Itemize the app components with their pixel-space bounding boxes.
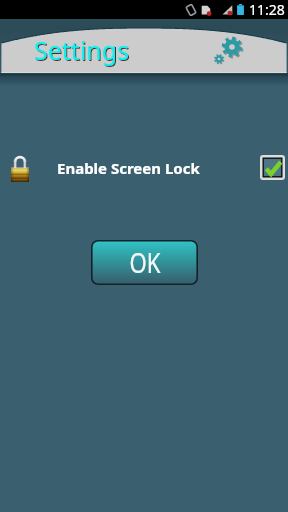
button[interactable]: Enable Screen Lock xyxy=(0,153,288,182)
button[interactable]: OK xyxy=(91,240,198,285)
button[interactable]: Settings xyxy=(208,32,252,76)
staticText: OK xyxy=(129,243,161,281)
staticText: Enable Screen Lock xyxy=(57,158,200,178)
staticText: Settings xyxy=(35,34,131,68)
staticText: Settings xyxy=(34,33,130,67)
staticText: 11:28 xyxy=(249,0,285,19)
button[interactable]: Enable Screen Lock xyxy=(260,155,285,180)
